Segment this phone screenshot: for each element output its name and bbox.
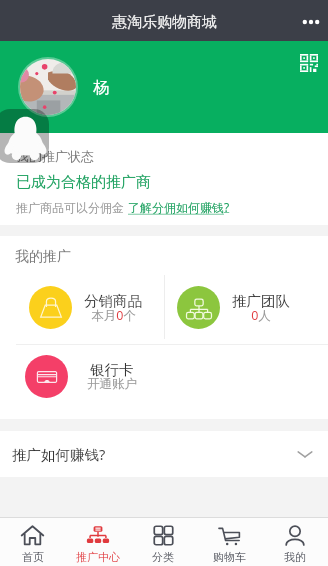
staticText: 推广商品可以分佣金 bbox=[16, 200, 124, 215]
button[interactable]: More options bbox=[294, 4, 328, 38]
button[interactable]: 银行卡 bbox=[0, 345, 164, 407]
staticText: 购物车 bbox=[213, 550, 246, 564]
staticText: 了解分佣如何赚钱? bbox=[128, 199, 230, 215]
button[interactable]: Profile photo bbox=[18, 57, 78, 117]
staticText: 我的 bbox=[284, 550, 306, 564]
button[interactable]: 分类 bbox=[130, 518, 196, 566]
button[interactable]: 我的 bbox=[262, 518, 328, 566]
staticText: 推广中心 bbox=[76, 550, 120, 564]
button[interactable]: 推广中心 bbox=[65, 518, 130, 566]
staticText: 本月0个 bbox=[91, 307, 136, 324]
staticText: 已成为合格的推广商 bbox=[16, 173, 151, 192]
staticText: 分类 bbox=[152, 550, 174, 564]
staticText: 银行卡 bbox=[90, 361, 134, 379]
staticText: 我的推广 bbox=[15, 248, 71, 266]
button[interactable]: 首页 bbox=[0, 518, 65, 566]
button[interactable]: 购物车 bbox=[196, 518, 262, 566]
button[interactable]: 了解分佣如何赚钱? bbox=[128, 199, 230, 215]
staticText: 分销商品 bbox=[84, 292, 142, 310]
staticText: 推广如何赚钱? bbox=[12, 444, 106, 464]
button[interactable]: 推广团队 bbox=[164, 270, 328, 344]
button[interactable]: 分销商品 bbox=[0, 270, 164, 344]
staticText: 推广团队 bbox=[232, 292, 290, 310]
staticText: 我的推广状态 bbox=[16, 148, 94, 164]
staticText: 杨 bbox=[93, 77, 110, 98]
button[interactable]: 推广如何赚钱? bbox=[0, 431, 328, 477]
staticText: 首页 bbox=[22, 550, 44, 564]
staticText: 0人 bbox=[251, 307, 271, 324]
staticText: 开通账户 bbox=[87, 376, 137, 392]
button[interactable]: QR code bbox=[295, 49, 323, 77]
staticText: 惠淘乐购物商城 bbox=[112, 13, 217, 32]
button[interactable]: Assistant bbox=[0, 109, 49, 163]
